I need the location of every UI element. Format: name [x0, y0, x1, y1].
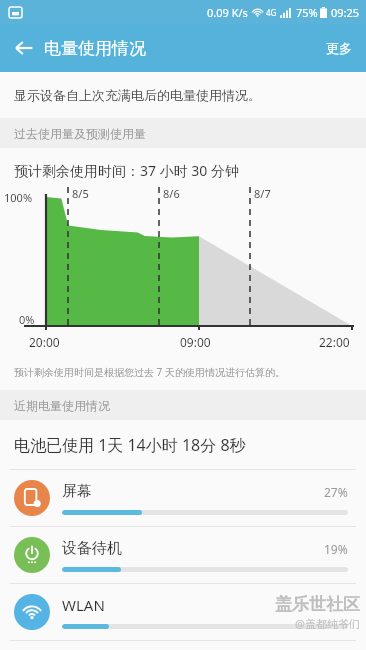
staticText: 电池已使用 1天 14小时 18分 8秒 [14, 434, 246, 456]
staticText: 8/5 [72, 186, 89, 201]
staticText: @盖都纯爷们 [295, 616, 360, 631]
button[interactable]: WLAN [0, 584, 366, 640]
staticText: 100% [4, 190, 33, 205]
staticText: 预计剩余使用时间是根据您过去 7 天的使用情况进行估算的。 [14, 365, 285, 379]
staticText: 75% [296, 5, 318, 20]
staticText: 8/6 [163, 186, 180, 201]
button[interactable]: 更多 [312, 26, 366, 70]
staticText: 09:25 [331, 5, 360, 20]
staticText: 0.09 K/s [207, 5, 248, 20]
button[interactable]: 设备待机 [0, 527, 366, 583]
staticText: 20:00 [29, 334, 60, 350]
staticText: 27% [324, 484, 348, 500]
staticText: 更多 [326, 40, 352, 56]
button[interactable]: Back [0, 24, 48, 72]
staticText: 电量使用情况 [44, 38, 146, 59]
staticText: 4G [266, 7, 277, 18]
staticText: 22:00 [319, 334, 350, 350]
staticText: 0% [19, 312, 35, 327]
staticText: 设备待机 [62, 539, 122, 558]
staticText: 8/7 [254, 186, 271, 201]
staticText: 过去使用量及预测使用量 [14, 126, 146, 141]
staticText: WLAN [62, 595, 105, 615]
staticText: 显示设备自上次充满电后的电量使用情况。 [14, 87, 261, 103]
staticText: 近期电量使用情况 [14, 398, 110, 413]
staticText: 19% [324, 541, 348, 557]
staticText: 预计剩余使用时间：37 小时 30 分钟 [14, 161, 239, 180]
staticText: 屏幕 [62, 482, 92, 501]
staticText: 盖乐世社区 [275, 594, 360, 615]
staticText: 09:00 [180, 334, 211, 350]
button[interactable]: 屏幕 [0, 470, 366, 526]
